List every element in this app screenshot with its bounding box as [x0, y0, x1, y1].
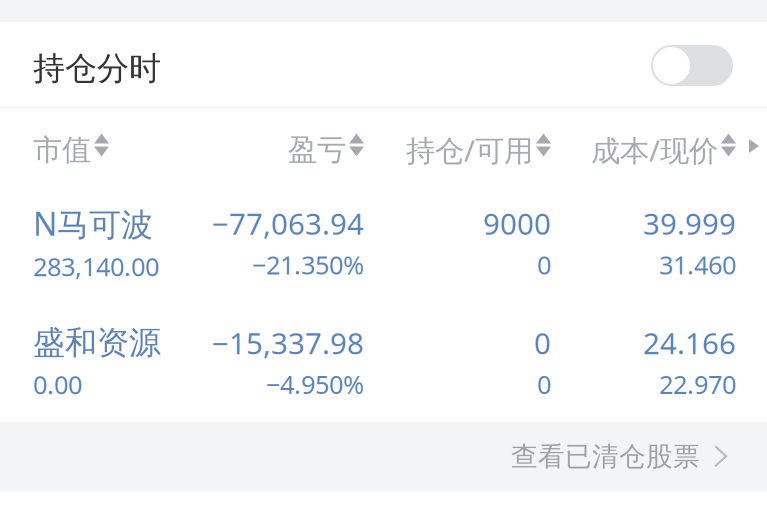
button[interactable]: 持仓分时开关: [652, 48, 734, 89]
staticText: 31.460: [659, 248, 736, 281]
staticText: 盈亏: [288, 132, 346, 168]
staticText: 持仓分时: [33, 49, 161, 88]
staticText: 9000: [483, 204, 551, 243]
staticText: 0: [537, 367, 551, 401]
staticText: 0: [537, 248, 551, 281]
staticText: 查看已清仓股票: [511, 440, 700, 473]
staticText: 22.970: [659, 367, 736, 401]
staticText: 市值: [33, 132, 91, 168]
staticText: 283,140.00: [33, 250, 159, 283]
staticText: −15,337.98: [212, 323, 364, 362]
staticText: 成本/现价: [591, 130, 718, 169]
button[interactable]: 市值: [33, 108, 205, 188]
staticText: 0: [534, 323, 551, 362]
staticText: 持仓/可用: [406, 130, 533, 169]
button[interactable]: 成本/现价: [551, 108, 736, 188]
staticText: 0.00: [33, 368, 82, 401]
button[interactable]: 盛和资源: [0, 323, 767, 401]
button[interactable]: 更多列: [736, 110, 759, 186]
staticText: N马可波: [33, 202, 153, 245]
button[interactable]: 持仓/可用: [364, 108, 551, 188]
button[interactable]: N马可波: [0, 202, 767, 283]
staticText: −4.950%: [266, 367, 364, 401]
staticText: −77,063.94: [212, 204, 364, 243]
staticText: 盛和资源: [33, 323, 161, 363]
staticText: −21.350%: [252, 248, 364, 281]
staticText: 39.999: [643, 204, 736, 243]
staticText: 24.166: [643, 323, 736, 362]
button[interactable]: 查看已清仓股票: [0, 422, 767, 491]
button[interactable]: 盈亏: [205, 108, 364, 188]
